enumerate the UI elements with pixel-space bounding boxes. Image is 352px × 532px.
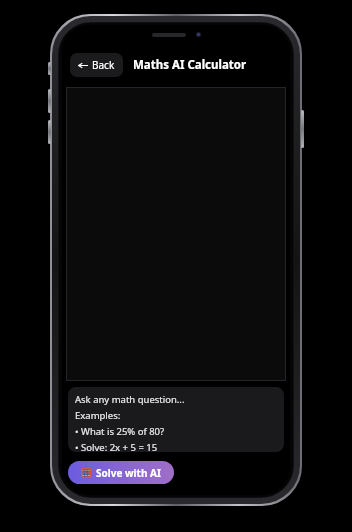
other: Calculator	[81, 468, 91, 478]
button[interactable]: Ask any math question...	[68, 387, 284, 452]
button[interactable]: Back	[70, 53, 123, 77]
staticText: • Solve: 2x + 5 = 15	[75, 441, 158, 452]
staticText: Examples:	[75, 409, 121, 422]
staticText: Back	[92, 58, 115, 72]
staticText: Solve with AI	[96, 466, 161, 480]
staticText: Ask any math question...	[75, 393, 185, 406]
staticText: • What is 25% of 80?	[75, 425, 165, 438]
other: Back	[78, 61, 88, 70]
staticText: Maths AI Calculator	[133, 57, 247, 73]
button[interactable]: Calculator	[68, 461, 174, 484]
